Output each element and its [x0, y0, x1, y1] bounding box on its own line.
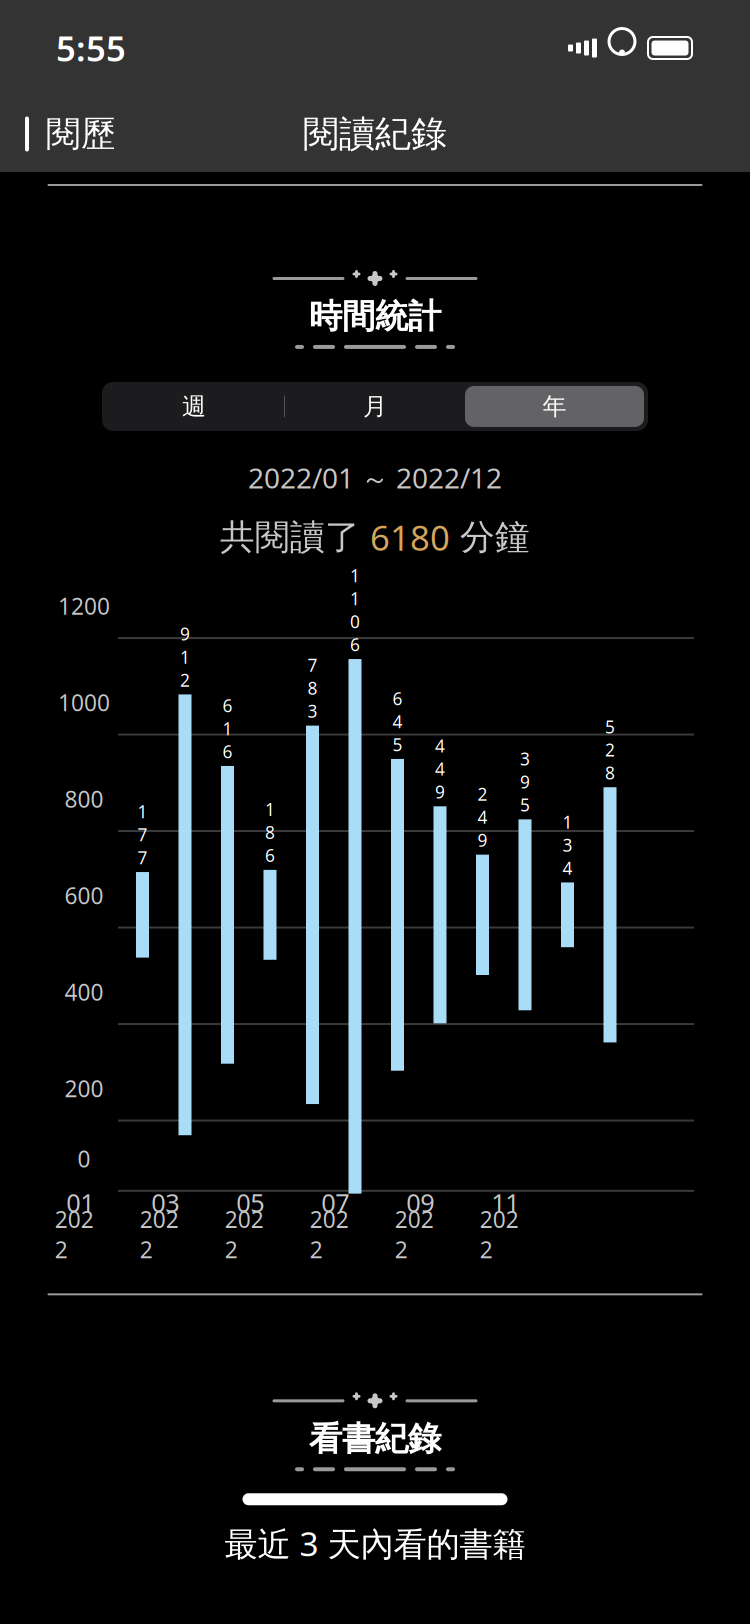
staticText: 共閱讀了 — [220, 516, 370, 559]
staticText — [289, 1185, 296, 1219]
staticText: 395 — [520, 747, 530, 816]
staticText: 1000 — [58, 687, 110, 718]
staticText: 週 — [182, 392, 206, 421]
staticText: 分鐘 — [450, 516, 530, 559]
staticText — [204, 1185, 211, 1219]
staticText: 449 — [435, 734, 445, 803]
staticText: 07 — [321, 1185, 349, 1219]
staticText: 249 — [477, 783, 487, 852]
button[interactable]: 月 — [285, 384, 465, 429]
staticText: 2022/01 ～ 2022/12 — [248, 459, 502, 496]
staticText: 134 — [562, 810, 572, 879]
staticText: 最近 3 天內看的書籍 — [224, 1521, 525, 1565]
staticText: 11 — [491, 1185, 519, 1219]
staticText: 186 — [265, 798, 275, 867]
staticText: 05 — [236, 1185, 264, 1219]
staticText: 1106 — [350, 564, 360, 656]
staticText: 400 — [64, 977, 103, 1007]
staticText: 600 — [64, 880, 103, 911]
staticText: 01 — [66, 1185, 94, 1219]
staticText: 645 — [392, 687, 402, 756]
staticText: 09 — [406, 1185, 434, 1219]
staticText: 800 — [64, 784, 103, 814]
staticText: 200 — [64, 1073, 103, 1104]
staticText: 1200 — [58, 591, 110, 621]
button[interactable]: Back to 閱歷 — [0, 103, 116, 165]
staticText — [374, 1185, 381, 1219]
staticText: 912 — [180, 622, 190, 691]
staticText: 2022 — [225, 1204, 264, 1264]
staticText: 2022 — [55, 1204, 94, 1264]
staticText: 時間統計 — [309, 296, 441, 337]
staticText: 0 — [77, 1144, 90, 1174]
staticText: 2022 — [395, 1204, 434, 1264]
button[interactable]: 週 — [104, 384, 284, 429]
staticText: 閱歷 — [46, 113, 116, 155]
staticText: 2022 — [480, 1204, 519, 1264]
staticText: 616 — [222, 694, 232, 763]
staticText — [459, 1185, 466, 1219]
staticText: 看書紀錄 — [309, 1418, 441, 1459]
staticText: 528 — [605, 715, 615, 784]
staticText — [119, 1185, 126, 1219]
staticText — [544, 1185, 551, 1219]
staticText: 5:55 — [56, 25, 126, 71]
staticText: 783 — [307, 654, 317, 723]
staticText: 2022 — [140, 1204, 179, 1264]
staticText: 2022 — [310, 1204, 349, 1264]
staticText: 月 — [363, 392, 387, 421]
staticText: 6180 — [370, 514, 450, 560]
button[interactable]: 年 — [465, 386, 644, 427]
staticText: 177 — [137, 800, 147, 869]
staticText: 年 — [542, 392, 566, 421]
staticText: 閱讀紀錄 — [303, 112, 447, 156]
staticText: 03 — [151, 1185, 179, 1219]
